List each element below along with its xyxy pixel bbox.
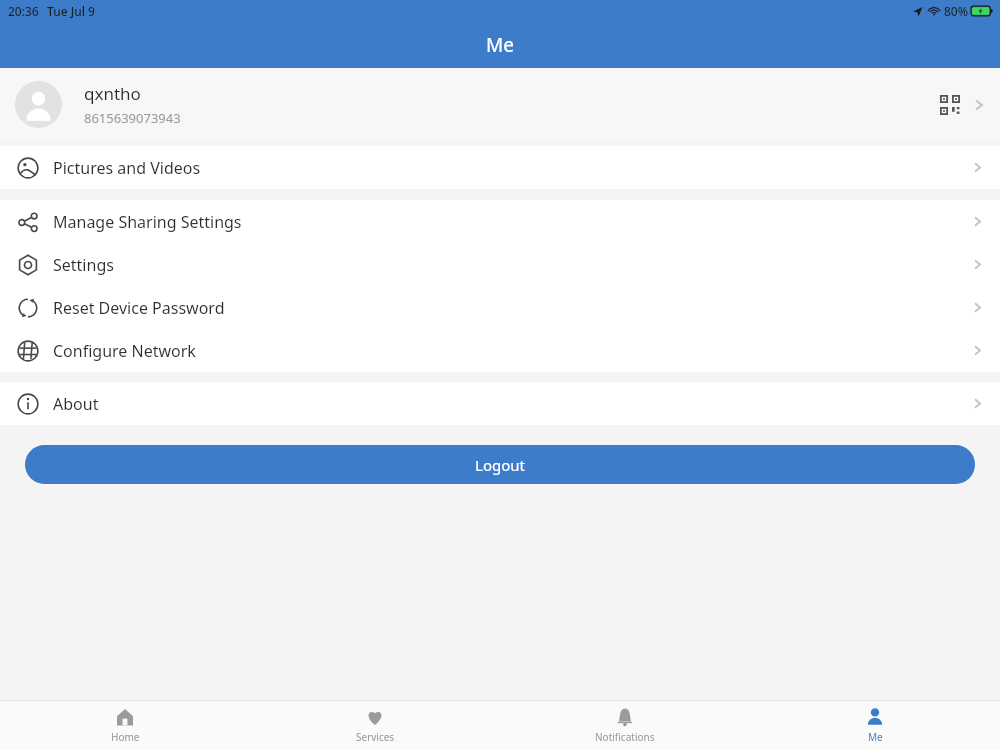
staticText: About [53, 393, 973, 415]
button[interactable]: Notifications [500, 701, 750, 750]
button[interactable]: Pictures and Videos [0, 146, 1000, 189]
staticText: Notifications [595, 730, 655, 744]
staticText: Me [868, 730, 883, 744]
button[interactable]: About [0, 382, 1000, 425]
button[interactable]: Settings [0, 243, 1000, 286]
button[interactable]: qxntho [0, 68, 1000, 141]
staticText: Tue Jul 9 [47, 3, 95, 19]
button[interactable]: Home [0, 701, 250, 750]
staticText: Me [486, 32, 514, 58]
staticText: Reset Device Password [53, 297, 973, 319]
button[interactable]: Me [750, 701, 1000, 750]
staticText: Pictures and Videos [53, 157, 973, 179]
staticText: Services [356, 730, 395, 744]
staticText: Settings [53, 254, 973, 276]
staticText: Logout [475, 455, 525, 475]
button[interactable]: Configure Network [0, 329, 1000, 372]
staticText: Home [111, 730, 140, 744]
button[interactable]: Reset Device Password [0, 286, 1000, 329]
button[interactable]: Logout [25, 445, 975, 484]
staticText: Manage Sharing Settings [53, 211, 973, 233]
button[interactable]: Show QR code [932, 87, 968, 123]
staticText: 20:36 [8, 3, 39, 19]
staticText: 80% [944, 3, 968, 19]
staticText: qxntho [84, 82, 141, 105]
button[interactable]: Manage Sharing Settings [0, 200, 1000, 243]
button[interactable]: Services [250, 701, 500, 750]
staticText: 8615639073943 [84, 109, 181, 127]
staticText: Configure Network [53, 340, 973, 362]
